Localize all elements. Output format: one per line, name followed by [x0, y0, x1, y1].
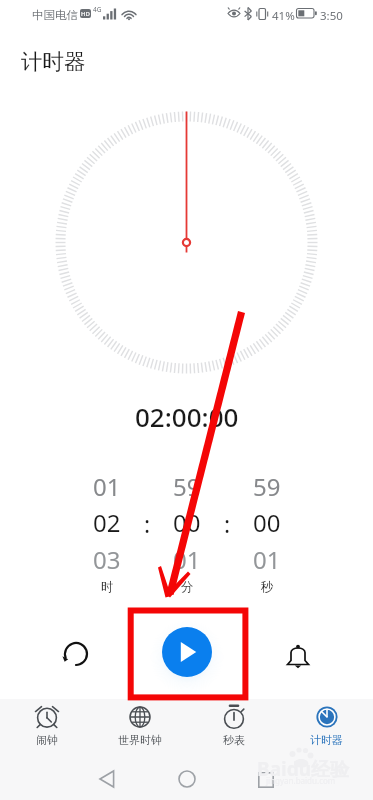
staticText: :: [224, 508, 231, 536]
staticText: 59: [173, 470, 201, 498]
staticText: 02:00:00: [135, 399, 239, 434]
staticText: 59: [253, 470, 281, 498]
staticText: 3:50: [320, 8, 343, 24]
staticText: 4G: [93, 5, 102, 14]
button[interactable]: 计时器: [280, 699, 373, 754]
button[interactable]: Start timer: [162, 627, 212, 677]
staticText: Baidu经验: [257, 756, 350, 782]
staticText: :: [144, 508, 151, 536]
staticText: 时: [101, 579, 114, 595]
button[interactable]: 世界时钟: [93, 699, 186, 754]
staticText: 秒: [261, 579, 274, 595]
button[interactable]: 秒表: [187, 699, 280, 754]
staticText: 闹钟: [36, 733, 58, 747]
staticText: 世界时钟: [118, 733, 162, 747]
staticText: 00: [173, 506, 201, 534]
button[interactable]: 01: [78, 464, 136, 598]
staticText: 计时器: [310, 733, 343, 747]
button[interactable]: Recent apps: [251, 765, 281, 795]
button[interactable]: Back: [92, 764, 122, 794]
staticText: 00: [253, 506, 281, 534]
staticText: 秒表: [223, 733, 245, 747]
staticText: 中国电信: [32, 8, 78, 22]
button[interactable]: 59: [158, 464, 216, 598]
staticText: jingyan.baidu.com: [266, 775, 336, 786]
staticText: 分: [181, 579, 194, 595]
staticText: 01: [93, 470, 121, 498]
staticText: 01: [253, 543, 281, 571]
staticText: 01: [173, 543, 201, 571]
staticText: 03: [93, 543, 121, 571]
button[interactable]: Reset: [54, 632, 98, 676]
staticText: 计时器: [21, 48, 86, 75]
staticText: 41%: [272, 8, 295, 24]
button[interactable]: Home: [172, 764, 202, 794]
button[interactable]: Ringtone: [276, 632, 320, 676]
staticText: HD: [81, 10, 90, 18]
button[interactable]: 59: [238, 464, 296, 598]
staticText: 02: [93, 506, 121, 534]
button[interactable]: 闹钟: [0, 699, 93, 754]
